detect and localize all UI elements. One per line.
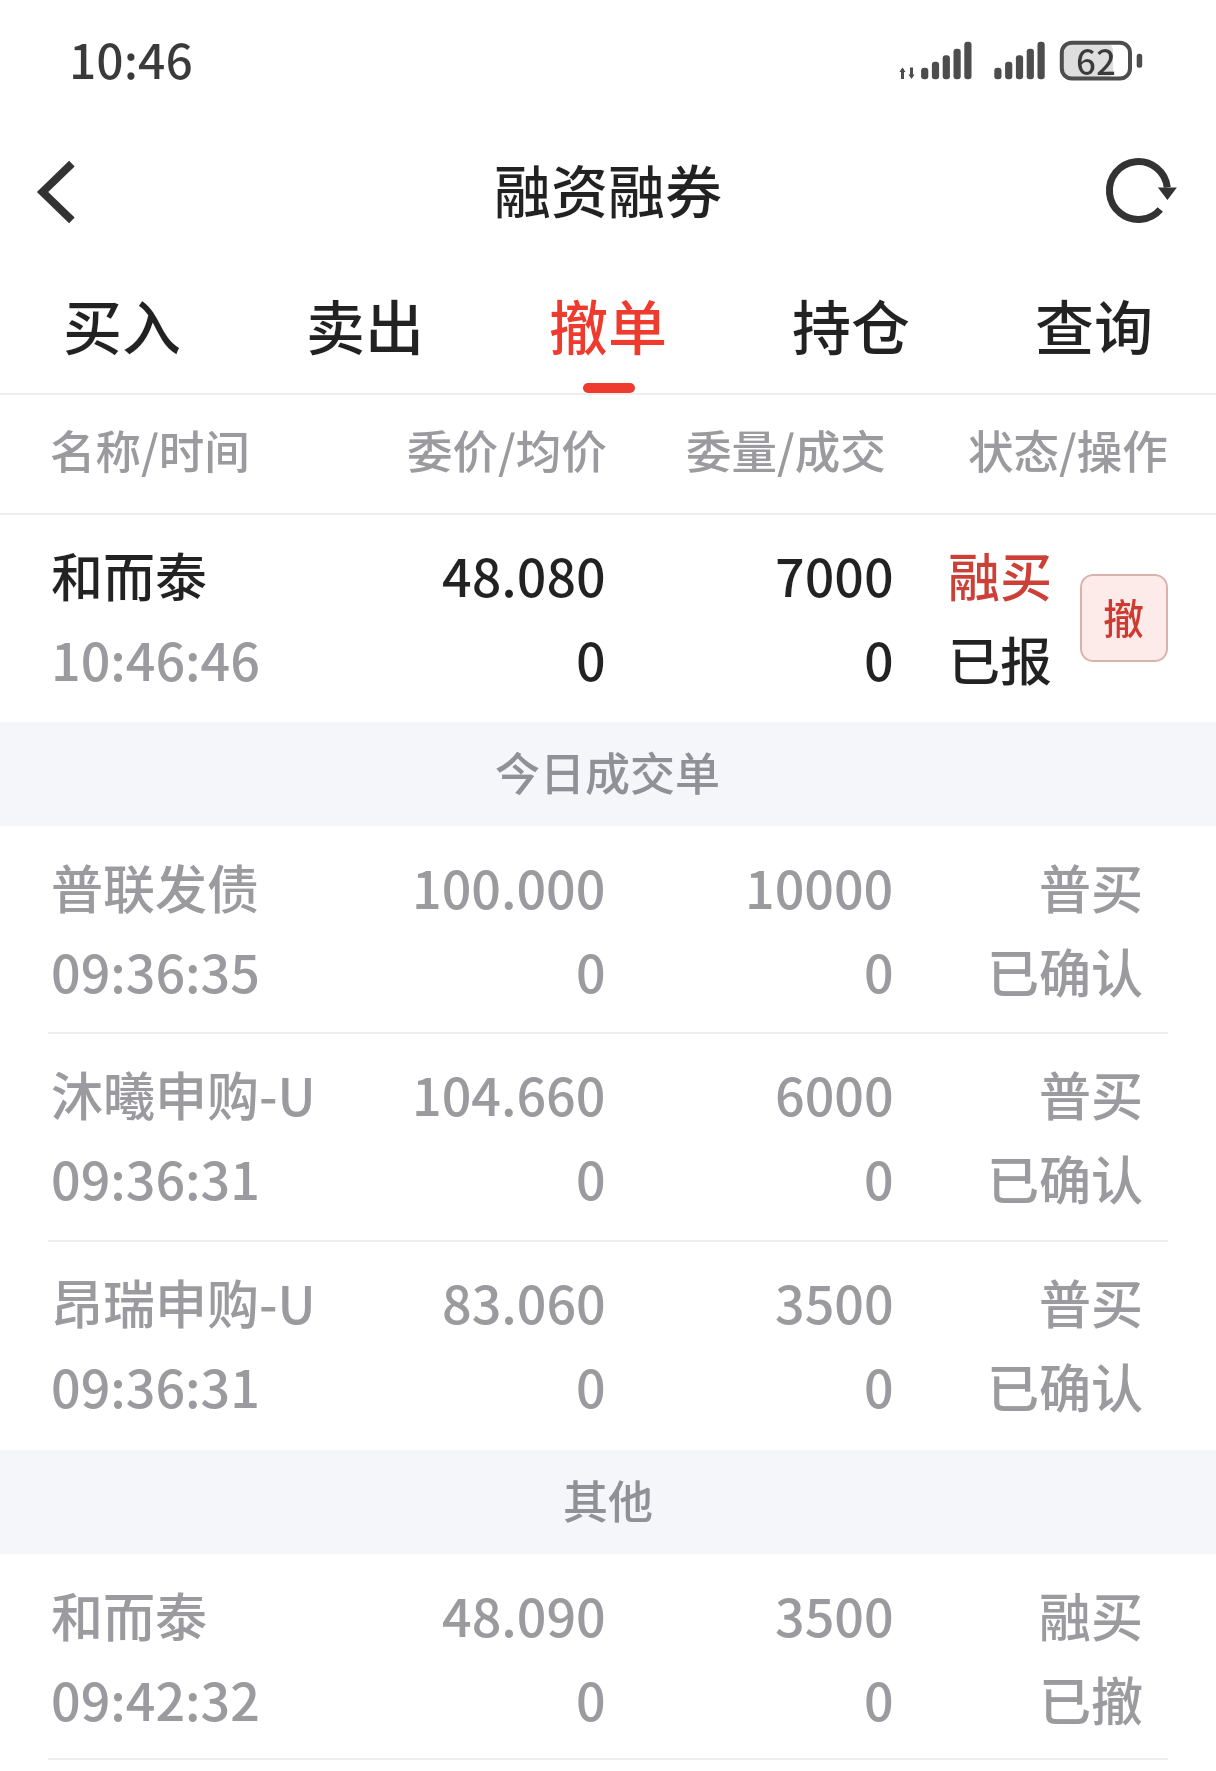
staticText: 昂瑞申购-U xyxy=(51,1264,316,1339)
staticText: 6000 xyxy=(775,1056,894,1131)
button[interactable]: 查询 xyxy=(973,262,1216,394)
button[interactable]: 买入 xyxy=(0,262,244,394)
staticText: 买入 xyxy=(63,282,182,367)
staticText: 10:46 xyxy=(69,23,193,93)
staticText: 已撤 xyxy=(1039,1661,1144,1736)
staticText: 0 xyxy=(864,1140,894,1215)
staticText: 09:36:35 xyxy=(51,933,260,1008)
staticText: 10:46:46 xyxy=(51,621,260,696)
staticText: 委价/均价 xyxy=(407,416,607,482)
staticText: 09:36:31 xyxy=(51,1140,260,1215)
staticText: 48.090 xyxy=(442,1577,606,1652)
button[interactable]: 和而泰 xyxy=(0,1554,1216,1759)
staticText: 融资融券 xyxy=(494,147,722,230)
staticText: 融买 xyxy=(1039,1577,1144,1652)
staticText: 3500 xyxy=(775,1577,894,1652)
staticText: 3500 xyxy=(775,1264,894,1339)
staticText: 已确认 xyxy=(987,933,1144,1008)
staticText: 卖出 xyxy=(306,282,425,367)
staticText: 已确认 xyxy=(987,1348,1144,1423)
staticText: 普买 xyxy=(1039,1264,1144,1339)
staticText: 48.080 xyxy=(442,537,606,612)
button[interactable]: Back xyxy=(0,132,111,250)
staticText: 沐曦申购-U xyxy=(51,1056,316,1131)
staticText: 和而泰 xyxy=(51,537,208,612)
button[interactable]: 持仓 xyxy=(730,262,973,394)
staticText: 0 xyxy=(864,933,894,1008)
staticText: 其他 xyxy=(563,1467,654,1532)
staticText: 撤单 xyxy=(549,282,668,367)
staticText: 7000 xyxy=(775,537,894,612)
staticText: 已报 xyxy=(948,621,1053,696)
staticText: 和而泰 xyxy=(51,1577,208,1652)
staticText: 09:36:31 xyxy=(51,1348,260,1423)
staticText: 0 xyxy=(864,1661,894,1736)
staticText: 09:42:32 xyxy=(51,1661,260,1736)
staticText: 100.000 xyxy=(412,849,606,924)
staticText: 普买 xyxy=(1039,849,1144,924)
staticText: 0 xyxy=(864,621,894,696)
staticText: 104.660 xyxy=(412,1056,606,1131)
staticText: 10000 xyxy=(745,849,894,924)
staticText: 83.060 xyxy=(442,1264,606,1339)
button[interactable]: 卖出 xyxy=(244,262,487,394)
staticText: 0 xyxy=(576,1348,606,1423)
button[interactable]: Refresh xyxy=(1086,132,1198,250)
staticText: 状态/操作 xyxy=(968,416,1168,482)
staticText: 62 xyxy=(1076,34,1116,85)
button[interactable]: 沐曦申购-U xyxy=(0,1033,1216,1241)
staticText: 委量/成交 xyxy=(686,416,886,482)
staticText: 已确认 xyxy=(987,1140,1144,1215)
staticText: 持仓 xyxy=(792,282,911,367)
staticText: 今日成交单 xyxy=(495,739,721,804)
button[interactable]: 普联发债 xyxy=(0,826,1216,1033)
staticText: 融买 xyxy=(948,537,1053,612)
button[interactable]: 昂瑞申购-U xyxy=(0,1241,1216,1447)
staticText: 撤 xyxy=(1103,586,1144,645)
staticText: 普联发债 xyxy=(51,849,260,924)
button[interactable]: 撤单 xyxy=(1080,574,1168,662)
staticText: 0 xyxy=(576,1140,606,1215)
staticText: 名称/时间 xyxy=(50,416,250,482)
staticText: 0 xyxy=(576,933,606,1008)
staticText: 0 xyxy=(864,1348,894,1423)
staticText: 0 xyxy=(576,1661,606,1736)
button[interactable]: 和而泰 xyxy=(0,514,1216,722)
staticText: 查询 xyxy=(1035,282,1154,367)
staticText: 0 xyxy=(576,621,606,696)
button[interactable]: 撤单 xyxy=(487,262,730,394)
staticText: 普买 xyxy=(1039,1056,1144,1131)
